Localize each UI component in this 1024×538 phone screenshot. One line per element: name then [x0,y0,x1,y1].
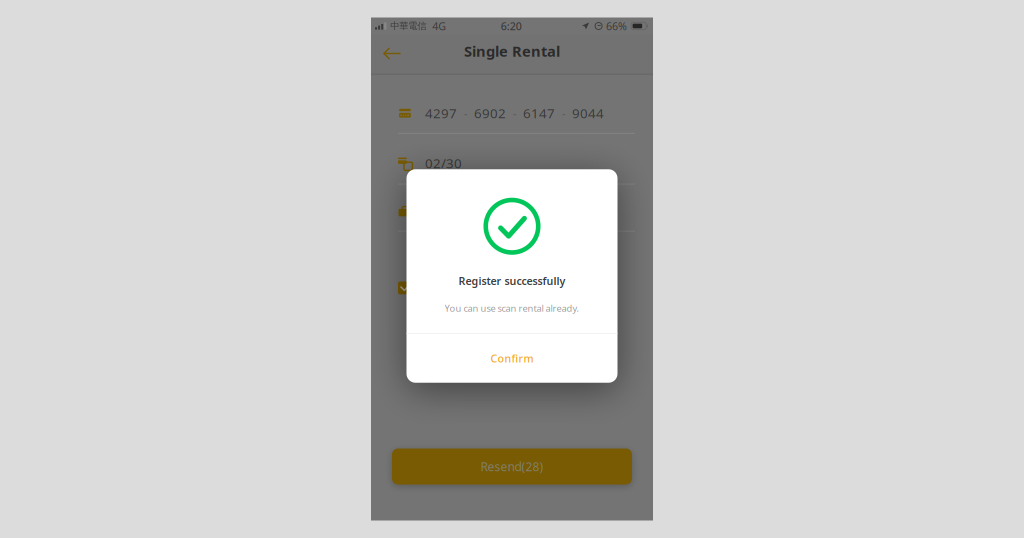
staticText: 66% [606,19,627,33]
staticText: Resend(28) [480,458,543,474]
staticText: 4297 [425,104,457,122]
staticText: 6902 [474,104,506,122]
staticText: 中華電信 [390,20,426,32]
button[interactable] [371,184,653,231]
staticText: 6:20 [501,19,522,33]
button[interactable] [371,231,653,297]
staticText: Register successfully [458,274,565,288]
button[interactable]: Back [371,38,411,70]
staticText: 4G [432,19,446,33]
staticText: - [562,106,565,120]
button[interactable]: 4297 [371,75,653,134]
staticText: - [464,106,467,120]
staticText: Confirm [490,351,533,365]
staticText: 6147 [523,104,555,122]
staticText: Single Rental [464,41,560,61]
button[interactable]: Resend(28) [392,448,632,484]
button[interactable]: 02/30 [371,134,653,184]
staticText: You can use scan rental already. [444,302,579,314]
staticText: 9044 [572,104,604,122]
staticText: 02/30 [425,154,462,172]
staticText: - [513,106,516,120]
button[interactable]: Confirm [406,334,617,383]
